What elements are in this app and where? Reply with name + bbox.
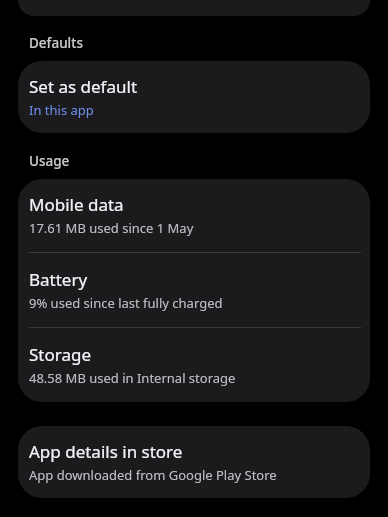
staticText: App downloaded from Google Play Store (29, 466, 277, 484)
staticText: Set as default (29, 75, 138, 98)
button[interactable]: Storage (18, 328, 370, 402)
staticText: 48.58 MB used in Internal storage (29, 369, 236, 387)
button[interactable]: App details in store (18, 426, 370, 498)
staticText: Battery (29, 268, 88, 291)
button[interactable]: Set as default (18, 61, 370, 133)
staticText: Mobile data (29, 193, 124, 216)
staticText: In this app (29, 101, 94, 119)
button[interactable]: Previous setting (18, 0, 370, 16)
staticText: 9% used since last fully charged (29, 294, 223, 312)
staticText: App details in store (29, 440, 183, 463)
staticText: Usage (29, 152, 70, 170)
staticText: Storage (29, 343, 92, 366)
button[interactable]: Battery (18, 253, 370, 327)
staticText: 17.61 MB used since 1 May (29, 219, 194, 237)
button[interactable]: Mobile data (18, 179, 370, 252)
staticText: Defaults (29, 34, 83, 52)
